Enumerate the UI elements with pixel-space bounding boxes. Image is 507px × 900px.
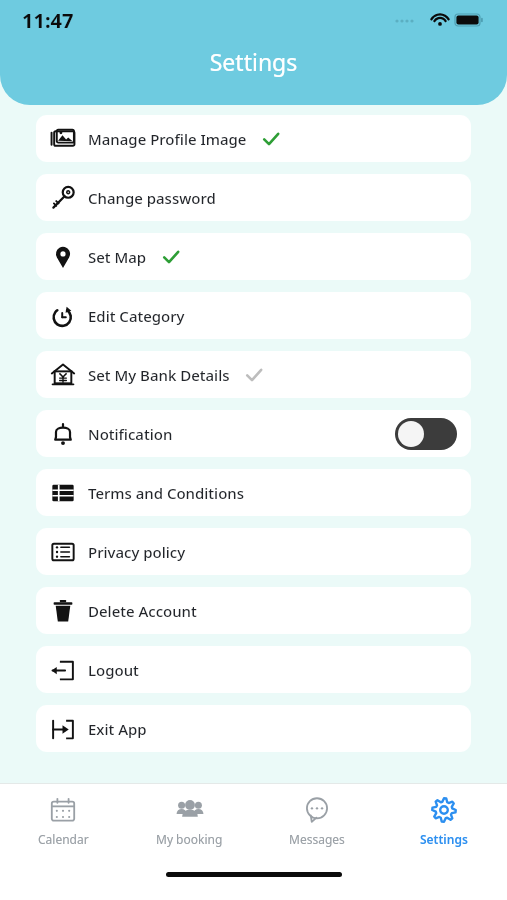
staticText: Manage Profile Image	[88, 129, 247, 149]
button[interactable]: Messages	[253, 784, 380, 868]
button[interactable]: Manage Profile Image	[36, 115, 471, 162]
button[interactable]: Change password	[36, 174, 471, 221]
staticText: Edit Category	[88, 306, 185, 326]
staticText: My booking	[156, 831, 223, 847]
staticText: Settings	[420, 831, 468, 847]
button[interactable]: Set My Bank Details	[36, 351, 471, 398]
button[interactable]: Notification toggle	[395, 418, 457, 450]
staticText: Settings	[0, 46, 507, 77]
staticText: Terms and Conditions	[88, 483, 245, 503]
staticText: Notification	[88, 424, 173, 444]
staticText: Calendar	[38, 831, 89, 847]
staticText: Change password	[88, 188, 216, 208]
button[interactable]: My booking	[126, 784, 253, 868]
staticText: Privacy policy	[88, 542, 186, 562]
staticText: 11:47	[22, 7, 74, 34]
staticText: Delete Account	[88, 601, 197, 621]
button[interactable]: Notification	[36, 410, 471, 457]
button[interactable]: Settings	[380, 784, 507, 868]
button[interactable]: Set Map	[36, 233, 471, 280]
staticText: Messages	[289, 831, 345, 847]
staticText: Logout	[88, 660, 139, 680]
staticText: Set My Bank Details	[88, 365, 230, 385]
button[interactable]: Calendar	[0, 784, 126, 868]
button[interactable]: Exit App	[36, 705, 471, 752]
button[interactable]: Delete Account	[36, 587, 471, 634]
button[interactable]: Logout	[36, 646, 471, 693]
button[interactable]: Privacy policy	[36, 528, 471, 575]
button[interactable]: Edit Category	[36, 292, 471, 339]
staticText: Set Map	[88, 247, 147, 267]
staticText: Exit App	[88, 719, 147, 739]
button[interactable]: Terms and Conditions	[36, 469, 471, 516]
